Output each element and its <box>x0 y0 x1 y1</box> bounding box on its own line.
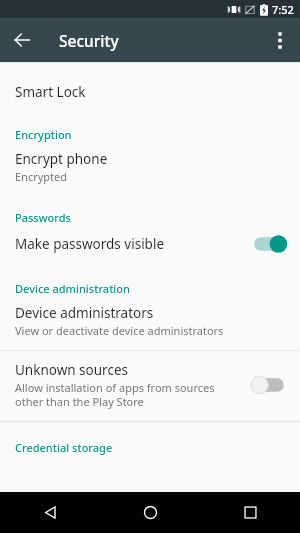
button[interactable]: Device administrators <box>0 300 300 350</box>
button[interactable]: Home <box>100 492 200 533</box>
staticText: Passwords <box>15 210 300 225</box>
staticText: Device administration <box>15 281 300 296</box>
staticText: Device administrators <box>15 304 154 322</box>
button[interactable]: Toggle off <box>250 374 288 396</box>
staticText: Encrypt phone <box>15 150 108 168</box>
button[interactable]: Back <box>0 18 44 62</box>
staticText: Security <box>59 30 119 51</box>
staticText: View or deactivate device administrators <box>15 323 224 338</box>
staticText: 7:52 <box>272 2 294 17</box>
button[interactable]: Toggle on <box>250 233 288 255</box>
button[interactable]: More options <box>260 20 300 60</box>
button[interactable]: Recent apps <box>200 492 300 533</box>
staticText: Credential storage <box>15 440 300 455</box>
button[interactable]: Encrypt phone <box>0 146 300 198</box>
staticText: Unknown sources <box>15 361 128 379</box>
staticText: Smart Lock <box>15 83 86 101</box>
staticText: Encryption <box>15 127 300 142</box>
staticText: Encrypted <box>15 169 68 184</box>
button[interactable]: Unknown sources <box>0 351 300 421</box>
button[interactable]: Make passwords visible <box>0 229 300 269</box>
button[interactable]: Smart Lock <box>0 63 300 115</box>
staticText: Make passwords visible <box>15 235 165 253</box>
button[interactable]: Back <box>0 492 100 533</box>
staticText: Allow installation of apps from sources … <box>15 380 215 409</box>
